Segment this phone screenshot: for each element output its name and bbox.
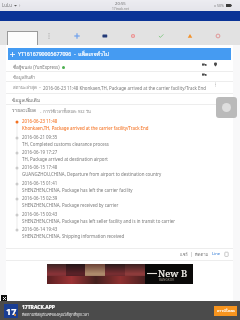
staticText: SHENZHEN,CHINA, Package has left seller … (22, 218, 176, 224)
staticText: LuLu (2, 2, 13, 8)
staticText: สถานะล่าสุด - (13, 84, 41, 91)
staticText: YT1616790005677096 - แพ็คเกจทั่วไป (18, 50, 109, 58)
staticText: 2016-06-15 17:48 (22, 164, 58, 170)
button[interactable]: More options (42, 29, 56, 43)
button[interactable]: Copy link (224, 252, 229, 257)
button[interactable]: 2016-06-15 01:41 (6, 181, 233, 196)
staticText: ดาวน์โหลด (217, 308, 235, 314)
staticText: - การใช้เวลาทั้งหมด: 932 วัน (40, 108, 91, 114)
staticText: 2016-06-15 00:43 (22, 211, 58, 217)
button[interactable]: ติดตาม (195, 251, 209, 258)
staticText: ข้อมูลสินค้า (13, 74, 36, 81)
staticText: ติดตามพัสดุภัณฑ์ของคุณได้ทุกที่ทุกเวลา (22, 312, 90, 318)
button[interactable]: ดาวน์โหลด (214, 306, 237, 316)
button[interactable]: Line (212, 251, 221, 257)
button[interactable]: 2016-06-21 09:35 (6, 135, 233, 150)
staticText: 2016-06-23 11:48 Khonkaen,TH, Package ar… (43, 85, 206, 91)
staticText: › (19, 2, 21, 8)
staticText: ข้อมูลเพิ่มเติม (12, 96, 41, 104)
button[interactable]: 2016-06-23 11:48 (6, 119, 233, 134)
staticText: 2016-06-15 01:41 (22, 180, 58, 186)
button[interactable]: แชร์ (180, 251, 188, 258)
staticText: Khonkaen,TH, Package arrived at the carr… (22, 125, 149, 131)
staticText: 20:55 (115, 1, 126, 7)
button[interactable]: 2016-06-19 17:27 (6, 150, 233, 165)
staticText: 2016-06-21 09:35 (22, 134, 58, 140)
button[interactable]: Advertisement (47, 264, 193, 284)
staticText: 2016-06-19 17:27 (22, 149, 58, 155)
staticText: New B (158, 267, 188, 280)
button[interactable]: Recording (126, 29, 140, 43)
staticText: 17TRACK.APP (22, 304, 55, 311)
staticText: TH, Completed customs clearance process (22, 141, 109, 147)
button[interactable]: New tab (70, 29, 84, 43)
staticText: GUANGZHOU,CHINA, Departure from airport … (22, 171, 162, 177)
staticText: 2016-06-15 02:39 (22, 195, 58, 201)
staticText: 2016-06-14 19:43 (22, 226, 58, 232)
button[interactable]: Drive (183, 29, 197, 43)
button[interactable]: 2016-06-14 19:43 (6, 227, 233, 242)
staticText: ชื่อผู้ขนส่ง (YunExpress) (13, 64, 60, 71)
button[interactable]: 2016-06-15 17:48 (6, 165, 233, 180)
button[interactable]: Approved (154, 29, 168, 43)
button[interactable]: Music (211, 29, 225, 43)
staticText: รายละเอียด (12, 106, 37, 114)
staticText: 50% (217, 3, 225, 8)
button[interactable]: Close ad (1, 295, 7, 301)
button[interactable]: 2016-06-15 00:43 (6, 212, 233, 227)
staticText: TH, Package arrived at destination airpo… (22, 156, 108, 162)
staticText: SHENZHEN,CHINA, Package received by carr… (22, 202, 119, 208)
staticText: 17 (6, 305, 17, 317)
button[interactable]: 2016-06-15 02:39 (6, 196, 233, 211)
staticText: BANGKOK (159, 278, 175, 282)
button[interactable]: Facebook (98, 29, 112, 43)
staticText: SHENZHEN,CHINA, Shipping information rec… (22, 233, 125, 239)
staticText: SHENZHEN,CHINA, Package has left the car… (22, 187, 133, 193)
staticText: 2016-06-23 11:48 (22, 118, 58, 124)
staticText: 17track.net (112, 7, 129, 11)
button[interactable]: YT1616790005677096 - แพ็คเกจทั่วไป (10, 48, 229, 60)
